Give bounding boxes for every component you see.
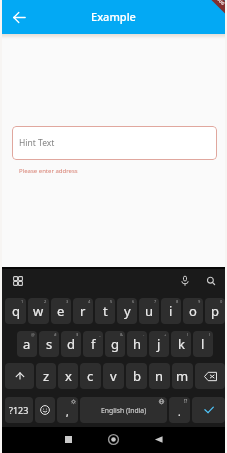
staticText: Example bbox=[91, 9, 136, 24]
button[interactable]: x bbox=[58, 363, 78, 389]
button[interactable]: v bbox=[103, 363, 124, 389]
staticText: 1 bbox=[21, 299, 24, 304]
staticText: e bbox=[57, 302, 65, 320]
button[interactable]: a bbox=[17, 331, 37, 357]
staticText: 8 bbox=[176, 299, 179, 304]
staticText: _ bbox=[99, 332, 101, 337]
staticText: t bbox=[103, 302, 108, 320]
staticText: q bbox=[12, 302, 20, 320]
button[interactable]: ?123 bbox=[5, 397, 33, 423]
staticText: 0 bbox=[220, 299, 223, 304]
button[interactable]: . bbox=[169, 397, 190, 423]
staticText: n bbox=[155, 367, 164, 385]
staticText: Please enter address bbox=[19, 167, 78, 175]
button[interactable]: w bbox=[28, 298, 49, 324]
button[interactable]: p bbox=[205, 298, 225, 324]
staticText: Hint Text bbox=[19, 137, 55, 149]
button[interactable]: Backspace bbox=[195, 363, 225, 389]
button[interactable]: m bbox=[172, 363, 193, 389]
staticText: 7 bbox=[154, 299, 157, 304]
button[interactable]: Emoji bbox=[35, 397, 55, 423]
button[interactable]: Hint Text bbox=[12, 126, 217, 160]
button[interactable]: Home bbox=[105, 431, 122, 448]
button[interactable]: Clipboard bbox=[13, 276, 23, 286]
staticText: 6 bbox=[132, 299, 135, 304]
staticText: z bbox=[43, 367, 50, 385]
button[interactable]: t bbox=[95, 298, 115, 324]
staticText: b bbox=[133, 367, 141, 385]
staticText: r bbox=[80, 302, 86, 320]
staticText: !? bbox=[184, 398, 188, 404]
button[interactable]: h bbox=[127, 331, 147, 357]
staticText: ?123 bbox=[9, 404, 29, 416]
staticText: x bbox=[65, 367, 72, 385]
staticText: # bbox=[54, 332, 57, 337]
staticText: w bbox=[33, 302, 44, 320]
button[interactable]: Back bbox=[9, 7, 30, 28]
button[interactable]: o bbox=[183, 298, 203, 324]
staticText: y bbox=[124, 302, 131, 320]
button[interactable]: Back bbox=[150, 431, 167, 448]
staticText: h bbox=[133, 335, 142, 353]
staticText: u bbox=[145, 302, 154, 320]
staticText: c bbox=[87, 367, 94, 385]
staticText: 9 bbox=[198, 299, 201, 304]
button[interactable]: s bbox=[39, 331, 59, 357]
staticText: 2 bbox=[44, 299, 47, 304]
staticText: o bbox=[189, 302, 197, 320]
staticText: j bbox=[157, 335, 161, 353]
button[interactable]: k bbox=[171, 331, 191, 357]
staticText: g bbox=[111, 335, 119, 353]
staticText: l bbox=[201, 335, 205, 353]
staticText: DEBUG bbox=[212, 0, 226, 6]
staticText: d bbox=[67, 335, 75, 353]
staticText: f bbox=[91, 335, 96, 353]
button[interactable]: c bbox=[80, 363, 101, 389]
staticText: @ bbox=[31, 332, 35, 337]
staticText: - bbox=[143, 332, 145, 337]
button[interactable]: Shift bbox=[5, 363, 34, 389]
staticText: a bbox=[23, 335, 31, 353]
button[interactable]: Enter bbox=[192, 397, 225, 423]
button[interactable]: y bbox=[117, 298, 137, 324]
button[interactable]: f bbox=[83, 331, 103, 357]
staticText: i bbox=[169, 302, 173, 320]
button[interactable]: n bbox=[149, 363, 170, 389]
staticText: m bbox=[176, 367, 189, 385]
button[interactable]: Voice input bbox=[180, 276, 190, 286]
staticText: ) bbox=[209, 332, 211, 337]
button[interactable]: e bbox=[51, 298, 71, 324]
button[interactable]: English (India) bbox=[80, 397, 167, 423]
staticText: s bbox=[46, 335, 53, 353]
staticText: . bbox=[178, 405, 181, 419]
staticText: ( bbox=[187, 332, 189, 337]
staticText: + bbox=[164, 332, 167, 337]
staticText: $ bbox=[76, 332, 79, 337]
button[interactable]: l bbox=[193, 331, 213, 357]
staticText: v bbox=[110, 367, 117, 385]
button[interactable]: g bbox=[105, 331, 125, 357]
staticText: English (India) bbox=[101, 406, 147, 415]
button[interactable]: Recents bbox=[60, 431, 77, 448]
staticText: p bbox=[211, 302, 219, 320]
staticText: 5 bbox=[110, 299, 113, 304]
button[interactable]: q bbox=[5, 298, 26, 324]
staticText: , bbox=[66, 405, 69, 419]
staticText: k bbox=[178, 335, 185, 353]
button[interactable]: r bbox=[73, 298, 93, 324]
button[interactable]: i bbox=[161, 298, 181, 324]
button[interactable]: u bbox=[139, 298, 159, 324]
button[interactable]: Search bbox=[206, 276, 216, 286]
staticText: 4 bbox=[88, 299, 91, 304]
button[interactable]: j bbox=[149, 331, 169, 357]
button[interactable]: z bbox=[36, 363, 56, 389]
button[interactable]: d bbox=[61, 331, 81, 357]
staticText: 3 bbox=[66, 299, 69, 304]
button[interactable]: , bbox=[57, 397, 78, 423]
staticText: & bbox=[120, 332, 123, 337]
button[interactable]: b bbox=[126, 363, 147, 389]
